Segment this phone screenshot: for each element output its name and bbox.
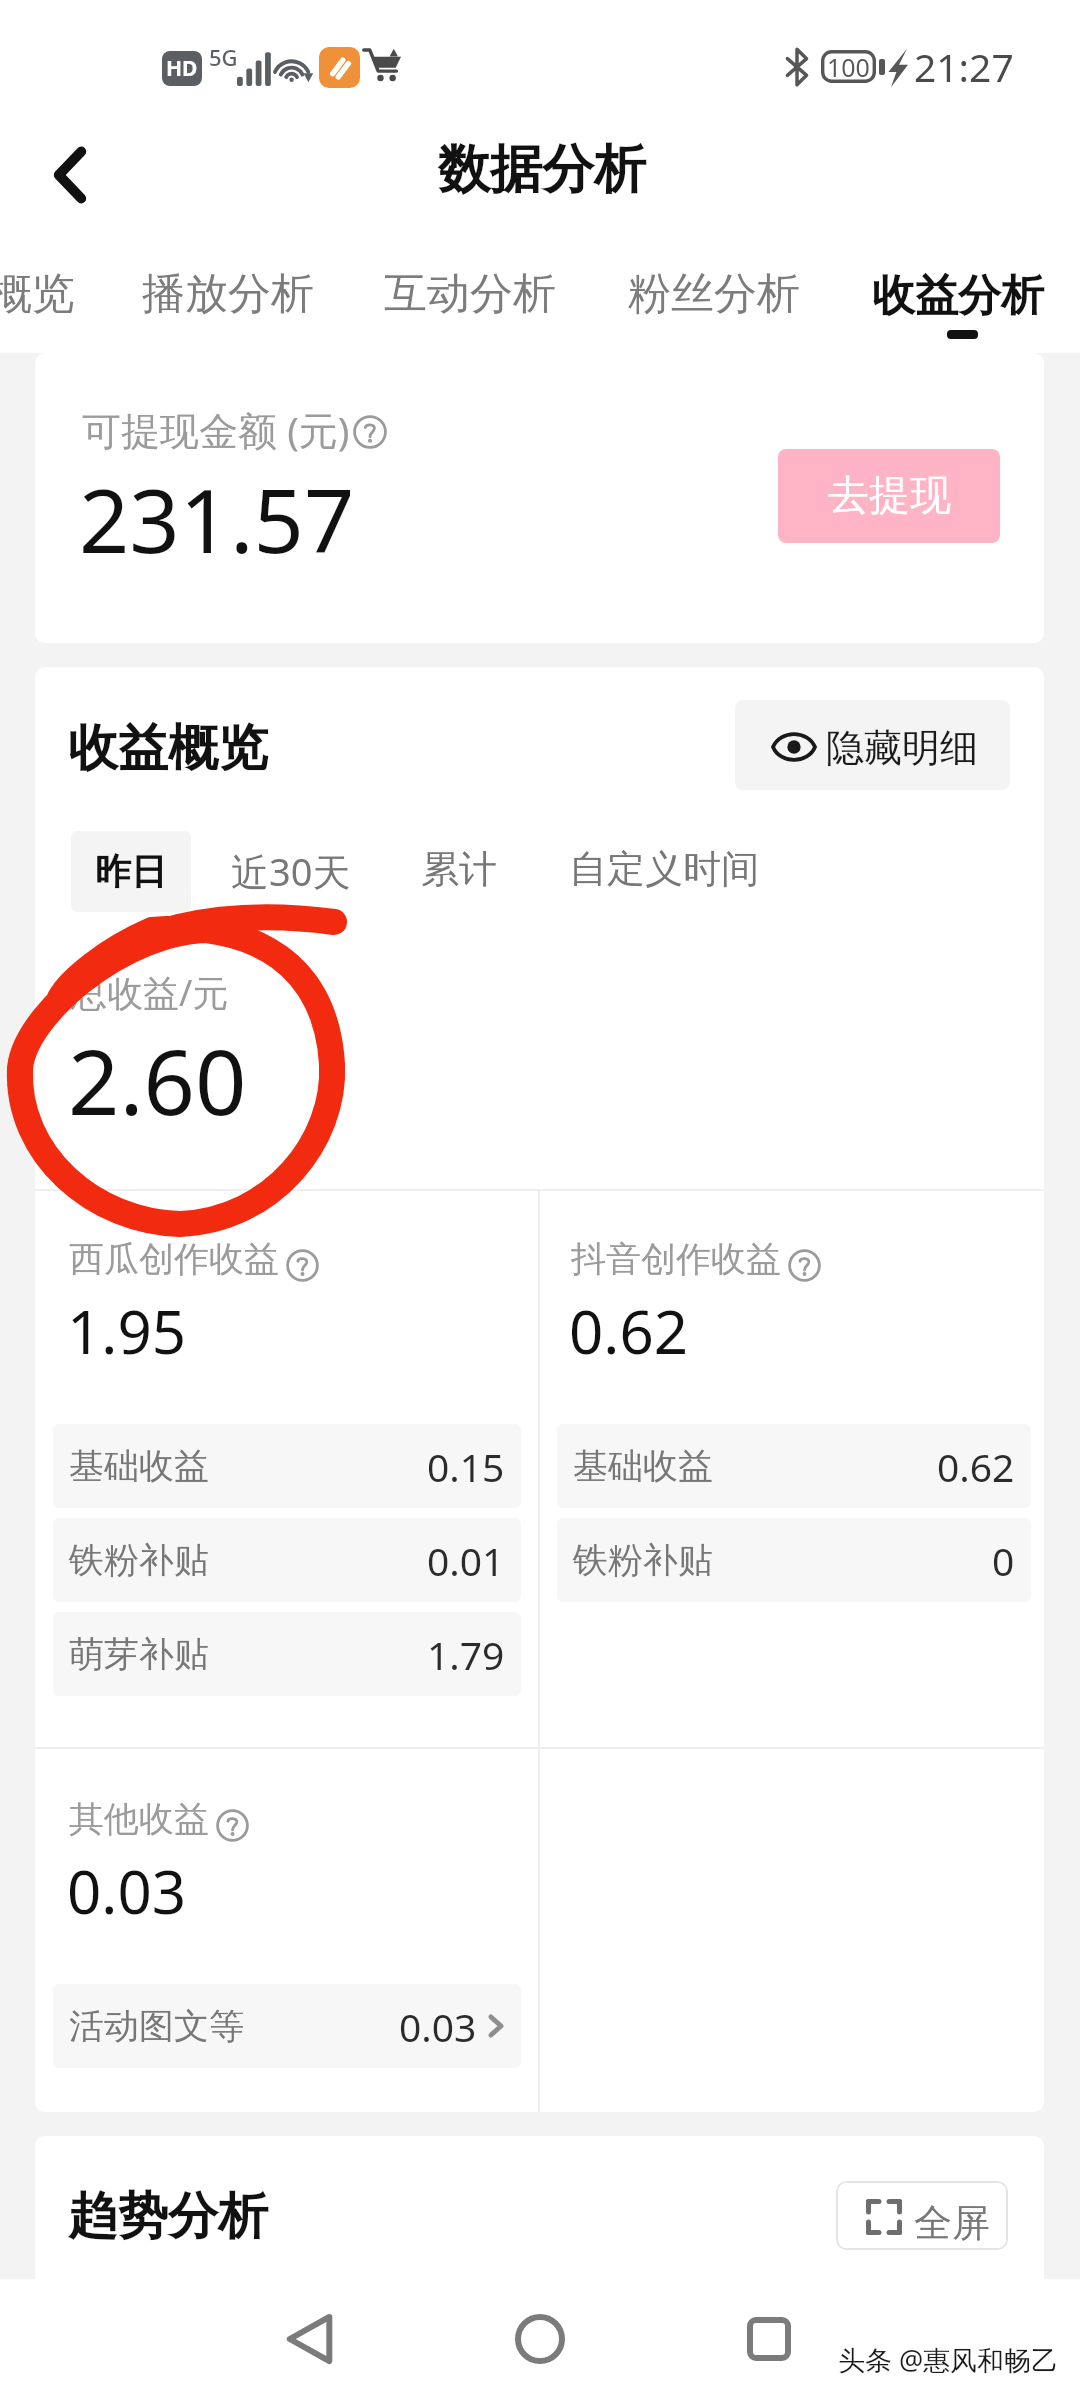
staticText: 全屏: [914, 2199, 990, 2247]
staticText: 概览: [0, 267, 75, 321]
staticText: 总收益/元: [71, 968, 229, 1017]
staticText: 基础收益: [573, 1444, 713, 1488]
staticText: 0.01: [427, 1534, 505, 1587]
button[interactable]: Back: [272, 2301, 348, 2377]
staticText: 抖音创作收益: [571, 1237, 781, 1281]
staticText: 播放分析: [142, 267, 314, 321]
staticText: 收益分析: [872, 269, 1044, 323]
staticText: 铁粉补贴: [69, 1538, 209, 1582]
staticText: 数据分析: [438, 137, 646, 203]
button[interactable]: 昨日: [71, 831, 191, 912]
button[interactable]: Home: [502, 2301, 578, 2377]
staticText: 萌芽补贴: [69, 1632, 209, 1676]
button[interactable]: 收益分析: [872, 258, 1044, 353]
button[interactable]: 互动分析: [384, 258, 556, 353]
staticText: 0.03: [399, 2000, 477, 2053]
staticText: 收益概览: [68, 717, 268, 780]
button[interactable]: Back: [25, 130, 115, 220]
button[interactable]: 自定义时间: [569, 845, 759, 893]
staticText: 昨日: [95, 849, 167, 894]
staticText: 活动图文等: [69, 2004, 244, 2048]
staticText: 隐藏明细: [826, 724, 978, 772]
staticText: 100: [827, 50, 870, 83]
button[interactable]: 活动图文等: [53, 1984, 521, 2068]
staticText: 累计: [421, 845, 497, 893]
button[interactable]: 近30天: [231, 845, 351, 897]
button[interactable]: 基础收益: [557, 1424, 1031, 1508]
staticText: 0.03: [67, 1850, 187, 1932]
button[interactable]: 去提现: [778, 449, 1000, 543]
staticText: 1.95: [67, 1290, 187, 1372]
button[interactable]: 累计: [421, 845, 497, 893]
staticText: 5G: [209, 42, 238, 72]
staticText: 基础收益: [69, 1444, 209, 1488]
button[interactable]: 播放分析: [142, 258, 314, 353]
staticText: 去提现: [828, 470, 951, 522]
staticText: 231.57: [79, 459, 355, 579]
staticText: 铁粉补贴: [573, 1538, 713, 1582]
staticText: 互动分析: [384, 267, 556, 321]
staticText: 近30天: [231, 845, 351, 897]
button[interactable]: 萌芽补贴: [53, 1612, 521, 1696]
staticText: 1.79: [427, 1628, 505, 1681]
button[interactable]: 基础收益: [53, 1424, 521, 1508]
button[interactable]: 概览: [0, 258, 76, 353]
button[interactable]: 全屏: [836, 2181, 1008, 2250]
staticText: 0.15: [427, 1440, 505, 1493]
button[interactable]: 铁粉补贴: [557, 1518, 1031, 1602]
staticText: HD: [166, 54, 198, 83]
staticText: 粉丝分析: [628, 267, 800, 321]
staticText: 2.60: [68, 1019, 247, 1142]
staticText: 其他收益: [69, 1797, 209, 1841]
staticText: 21:27: [914, 40, 1014, 93]
staticText: 0: [992, 1534, 1015, 1587]
button[interactable]: 隐藏明细: [735, 700, 1010, 790]
staticText: 0.62: [937, 1440, 1015, 1493]
staticText: 西瓜创作收益: [69, 1237, 279, 1281]
staticText: 头条 @惠风和畅乙: [838, 2341, 1059, 2378]
button[interactable]: Recent apps: [731, 2301, 807, 2377]
staticText: 自定义时间: [569, 845, 759, 893]
staticText: 0.62: [569, 1290, 689, 1372]
button[interactable]: 铁粉补贴: [53, 1518, 521, 1602]
button[interactable]: 粉丝分析: [628, 258, 800, 353]
staticText: 趋势分析: [68, 2185, 268, 2248]
staticText: 可提现金额 (元): [82, 403, 350, 456]
